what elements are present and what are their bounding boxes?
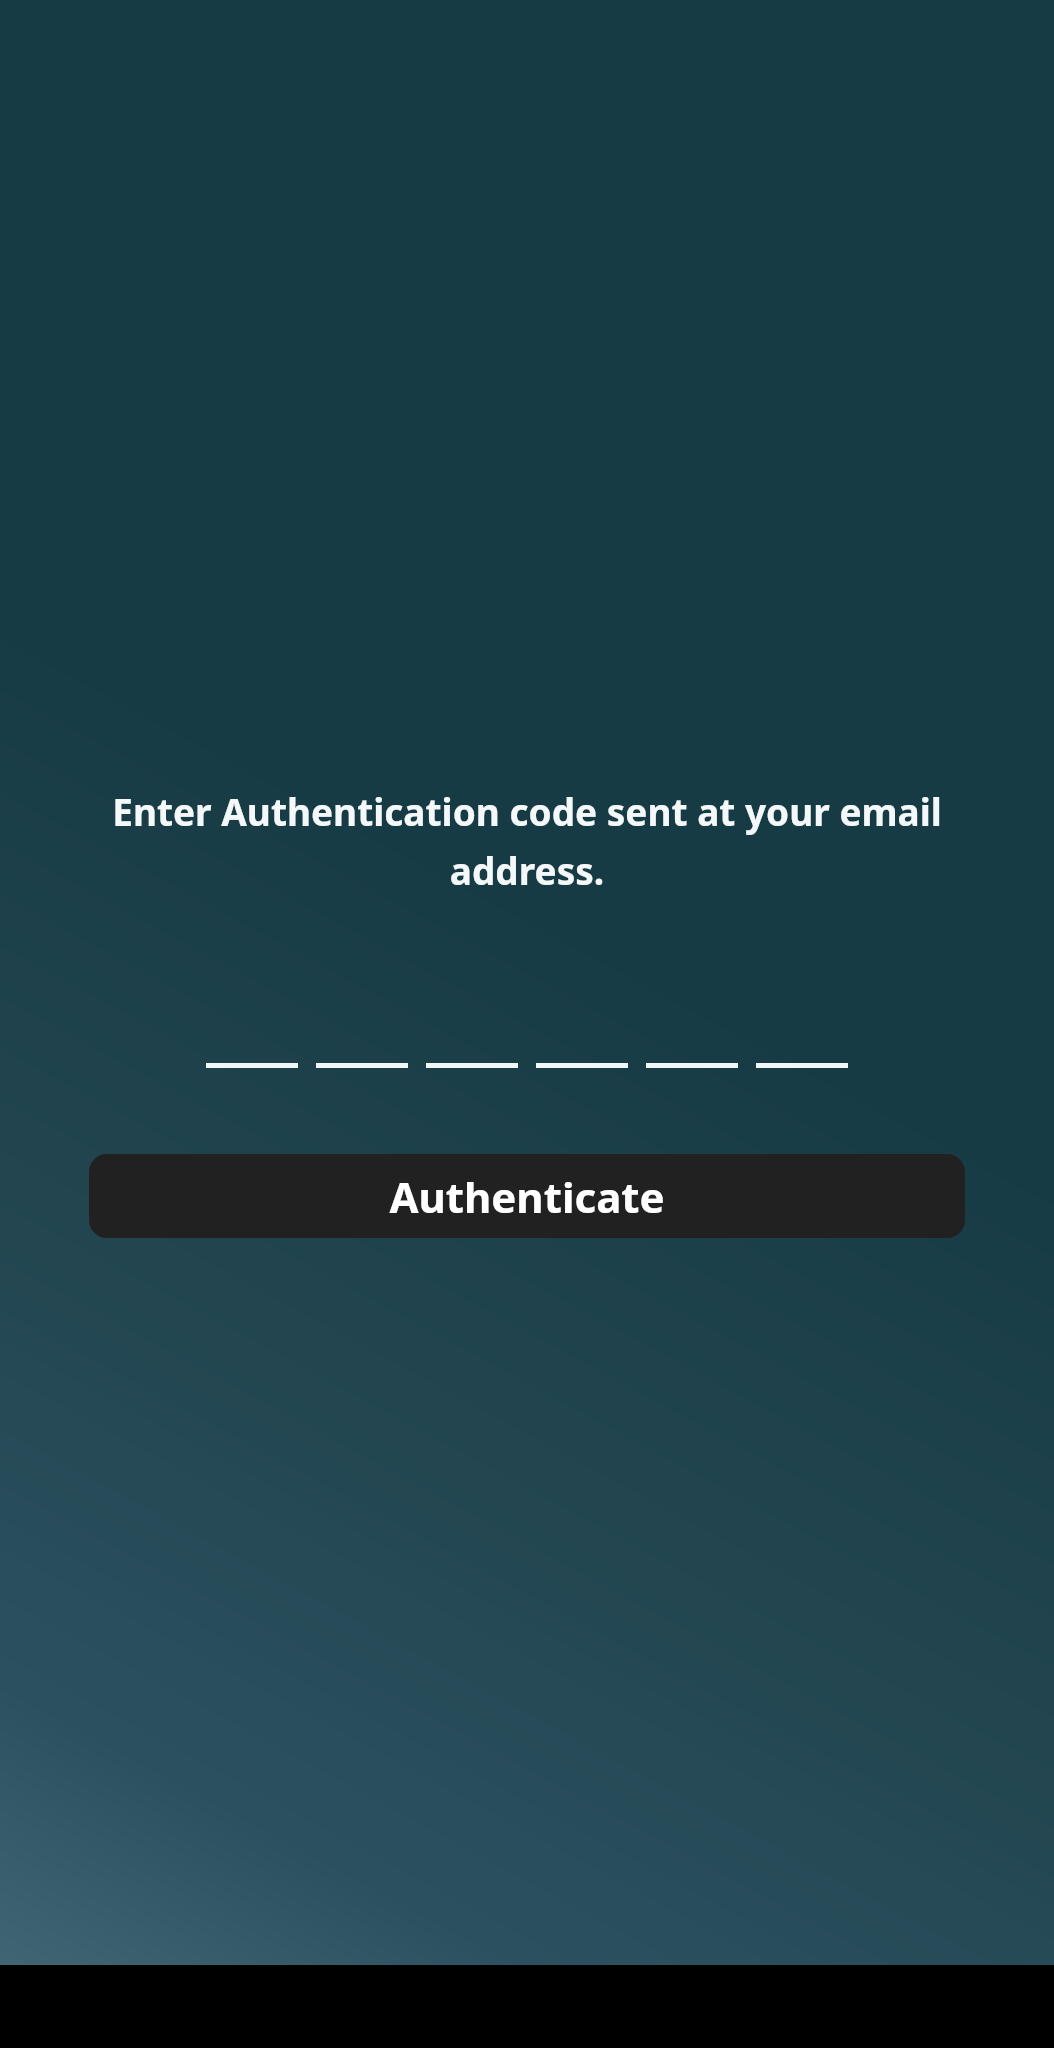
- button[interactable]: Code digit 5: [646, 1022, 738, 1068]
- staticText: Enter Authentication code sent at your e…: [84, 786, 970, 896]
- button[interactable]: Authenticate: [89, 1154, 965, 1238]
- button[interactable]: Code digit 3: [426, 1022, 518, 1068]
- button[interactable]: Code digit 2: [316, 1022, 408, 1068]
- button[interactable]: Code digit 6: [756, 1022, 848, 1068]
- staticText: Authenticate: [389, 1168, 665, 1225]
- button[interactable]: Code digit 4: [536, 1022, 628, 1068]
- button[interactable]: Code digit 1: [206, 1022, 298, 1068]
